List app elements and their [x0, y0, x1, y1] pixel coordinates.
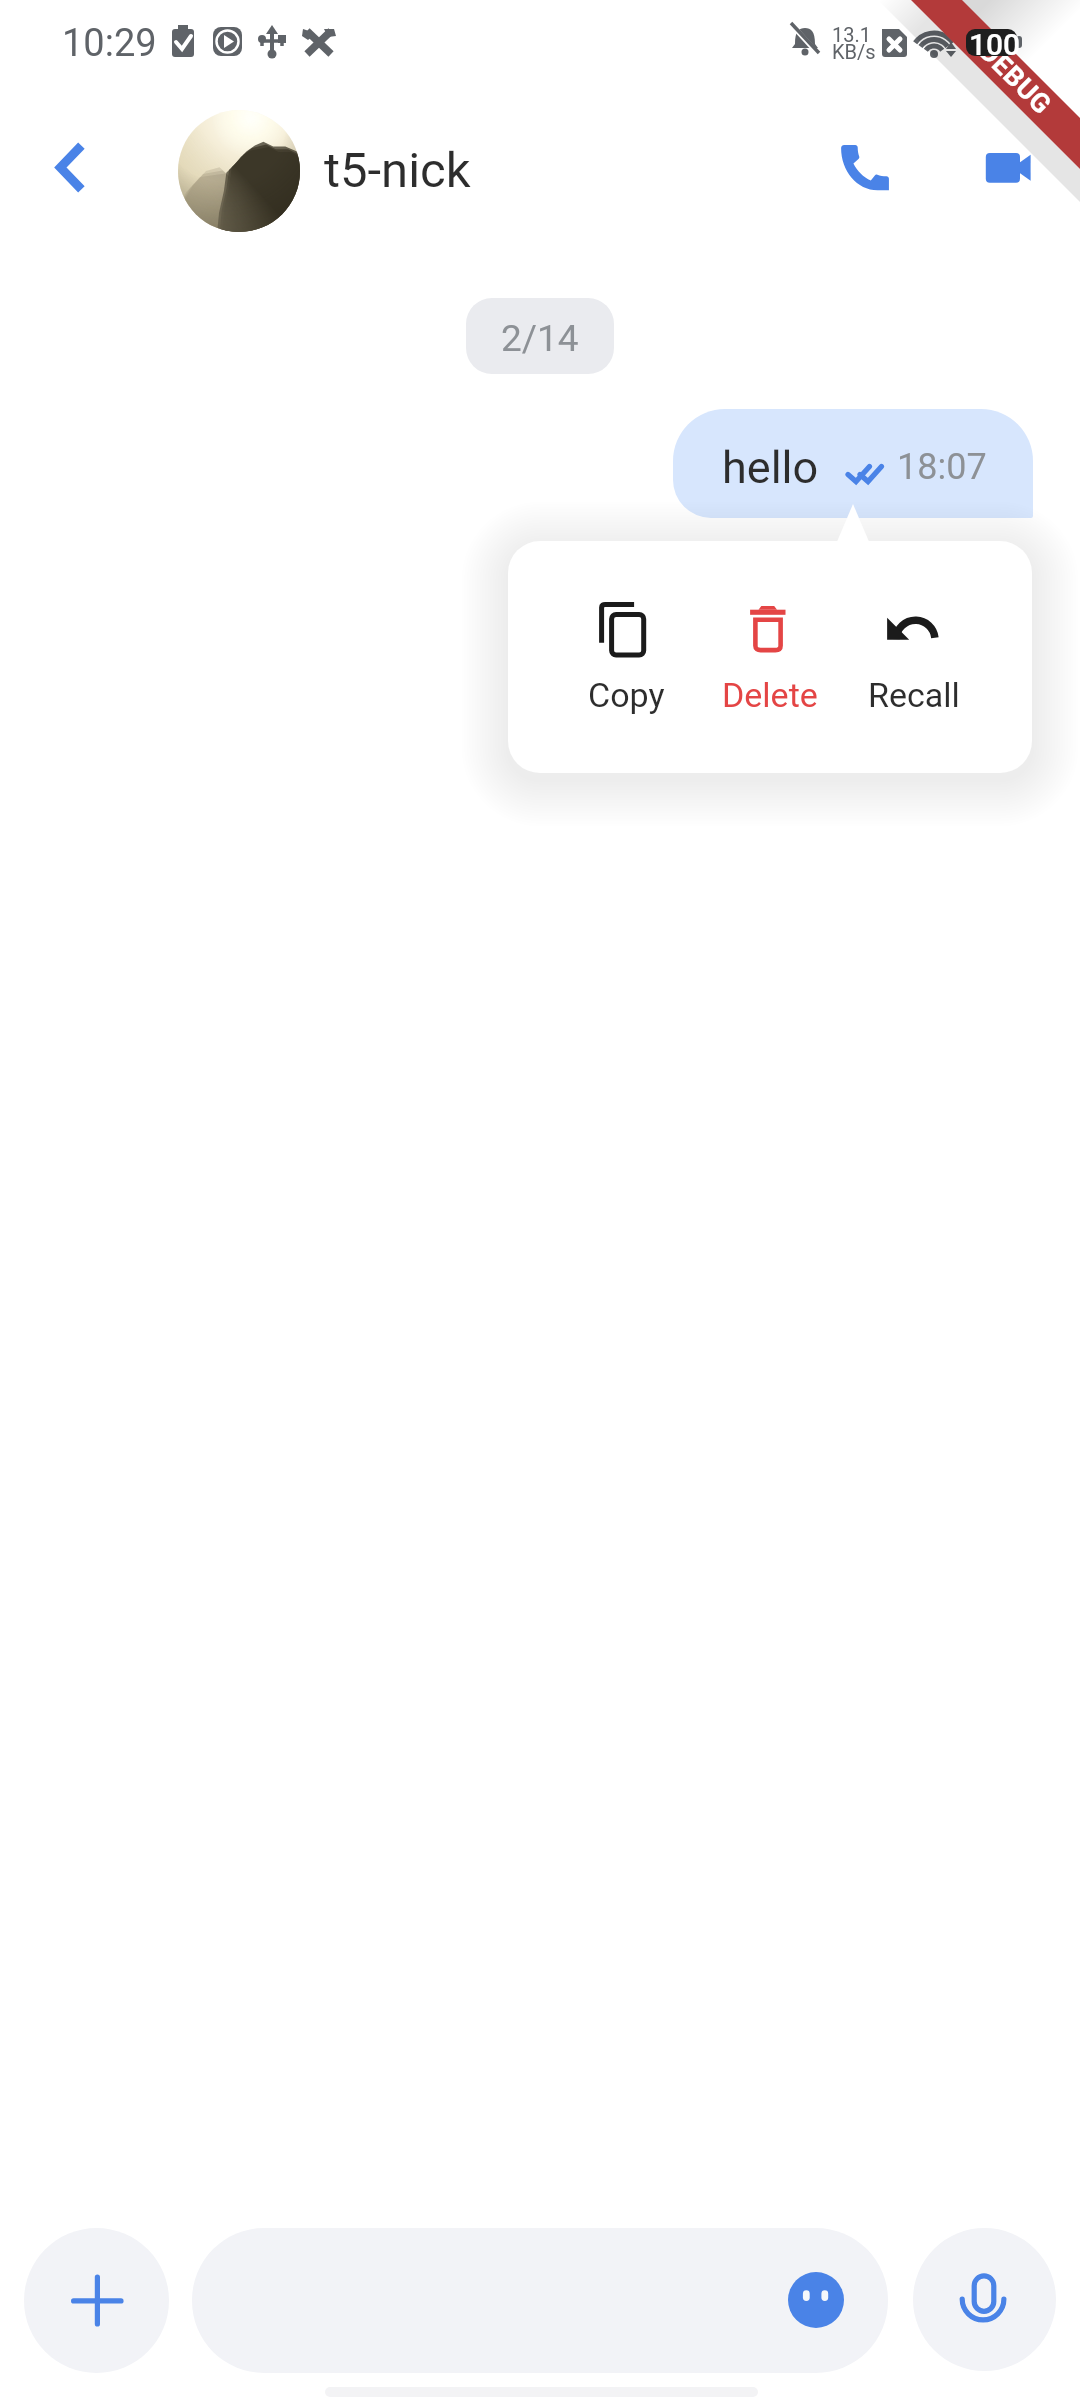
staticText: Copy	[588, 675, 665, 715]
button[interactable]: Delete	[690, 596, 850, 715]
staticText: DEBUG	[973, 36, 1058, 121]
staticText: hello	[722, 441, 819, 494]
button[interactable]: Recall	[834, 596, 994, 715]
staticText: 10:29	[62, 21, 157, 66]
staticText: 100	[969, 27, 1021, 62]
button[interactable]: hello	[673, 409, 1033, 518]
staticText: 18:07	[897, 446, 987, 488]
staticText: t5-nick	[324, 142, 471, 199]
button[interactable]: Profile photo	[178, 110, 300, 232]
button[interactable]: Add attachment	[24, 2228, 169, 2373]
staticText: KB/s	[832, 40, 876, 63]
staticText: Recall	[868, 675, 960, 715]
staticText: 2/14	[501, 317, 579, 360]
staticText: 13.1	[832, 23, 871, 46]
button[interactable]: Voice message	[913, 2228, 1056, 2371]
staticText: Delete	[722, 675, 818, 715]
button[interactable]: Copy	[546, 596, 706, 715]
button[interactable]: Message	[192, 2228, 888, 2373]
button[interactable]: Video call	[958, 118, 1058, 218]
button[interactable]: Call	[814, 118, 914, 218]
button[interactable]: Back	[22, 118, 122, 218]
button[interactable]: Emoji	[788, 2272, 844, 2328]
